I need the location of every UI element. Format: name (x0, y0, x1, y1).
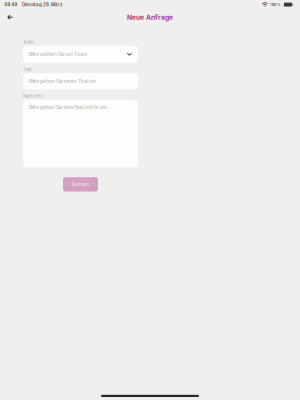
staticText: Bitte geben Sie einen Titel ein (29, 78, 96, 84)
staticText: Neue Anfrage (127, 13, 173, 21)
staticText: Team: (23, 40, 35, 45)
staticText: Senden (71, 182, 89, 187)
staticText: Dienstag 28. März (22, 2, 63, 7)
button[interactable]: Zurück (0, 11, 19, 23)
staticText: Bitte wählen Sie ein Team (29, 51, 87, 57)
staticText: 100 % (270, 2, 281, 7)
button[interactable]: Senden (63, 177, 98, 191)
staticText: Titel: (23, 67, 32, 72)
staticText: Bitte geben Sie eine Nachricht ein (29, 104, 107, 110)
staticText: 09:49 (4, 2, 17, 7)
staticText: Nachricht: (23, 94, 43, 99)
